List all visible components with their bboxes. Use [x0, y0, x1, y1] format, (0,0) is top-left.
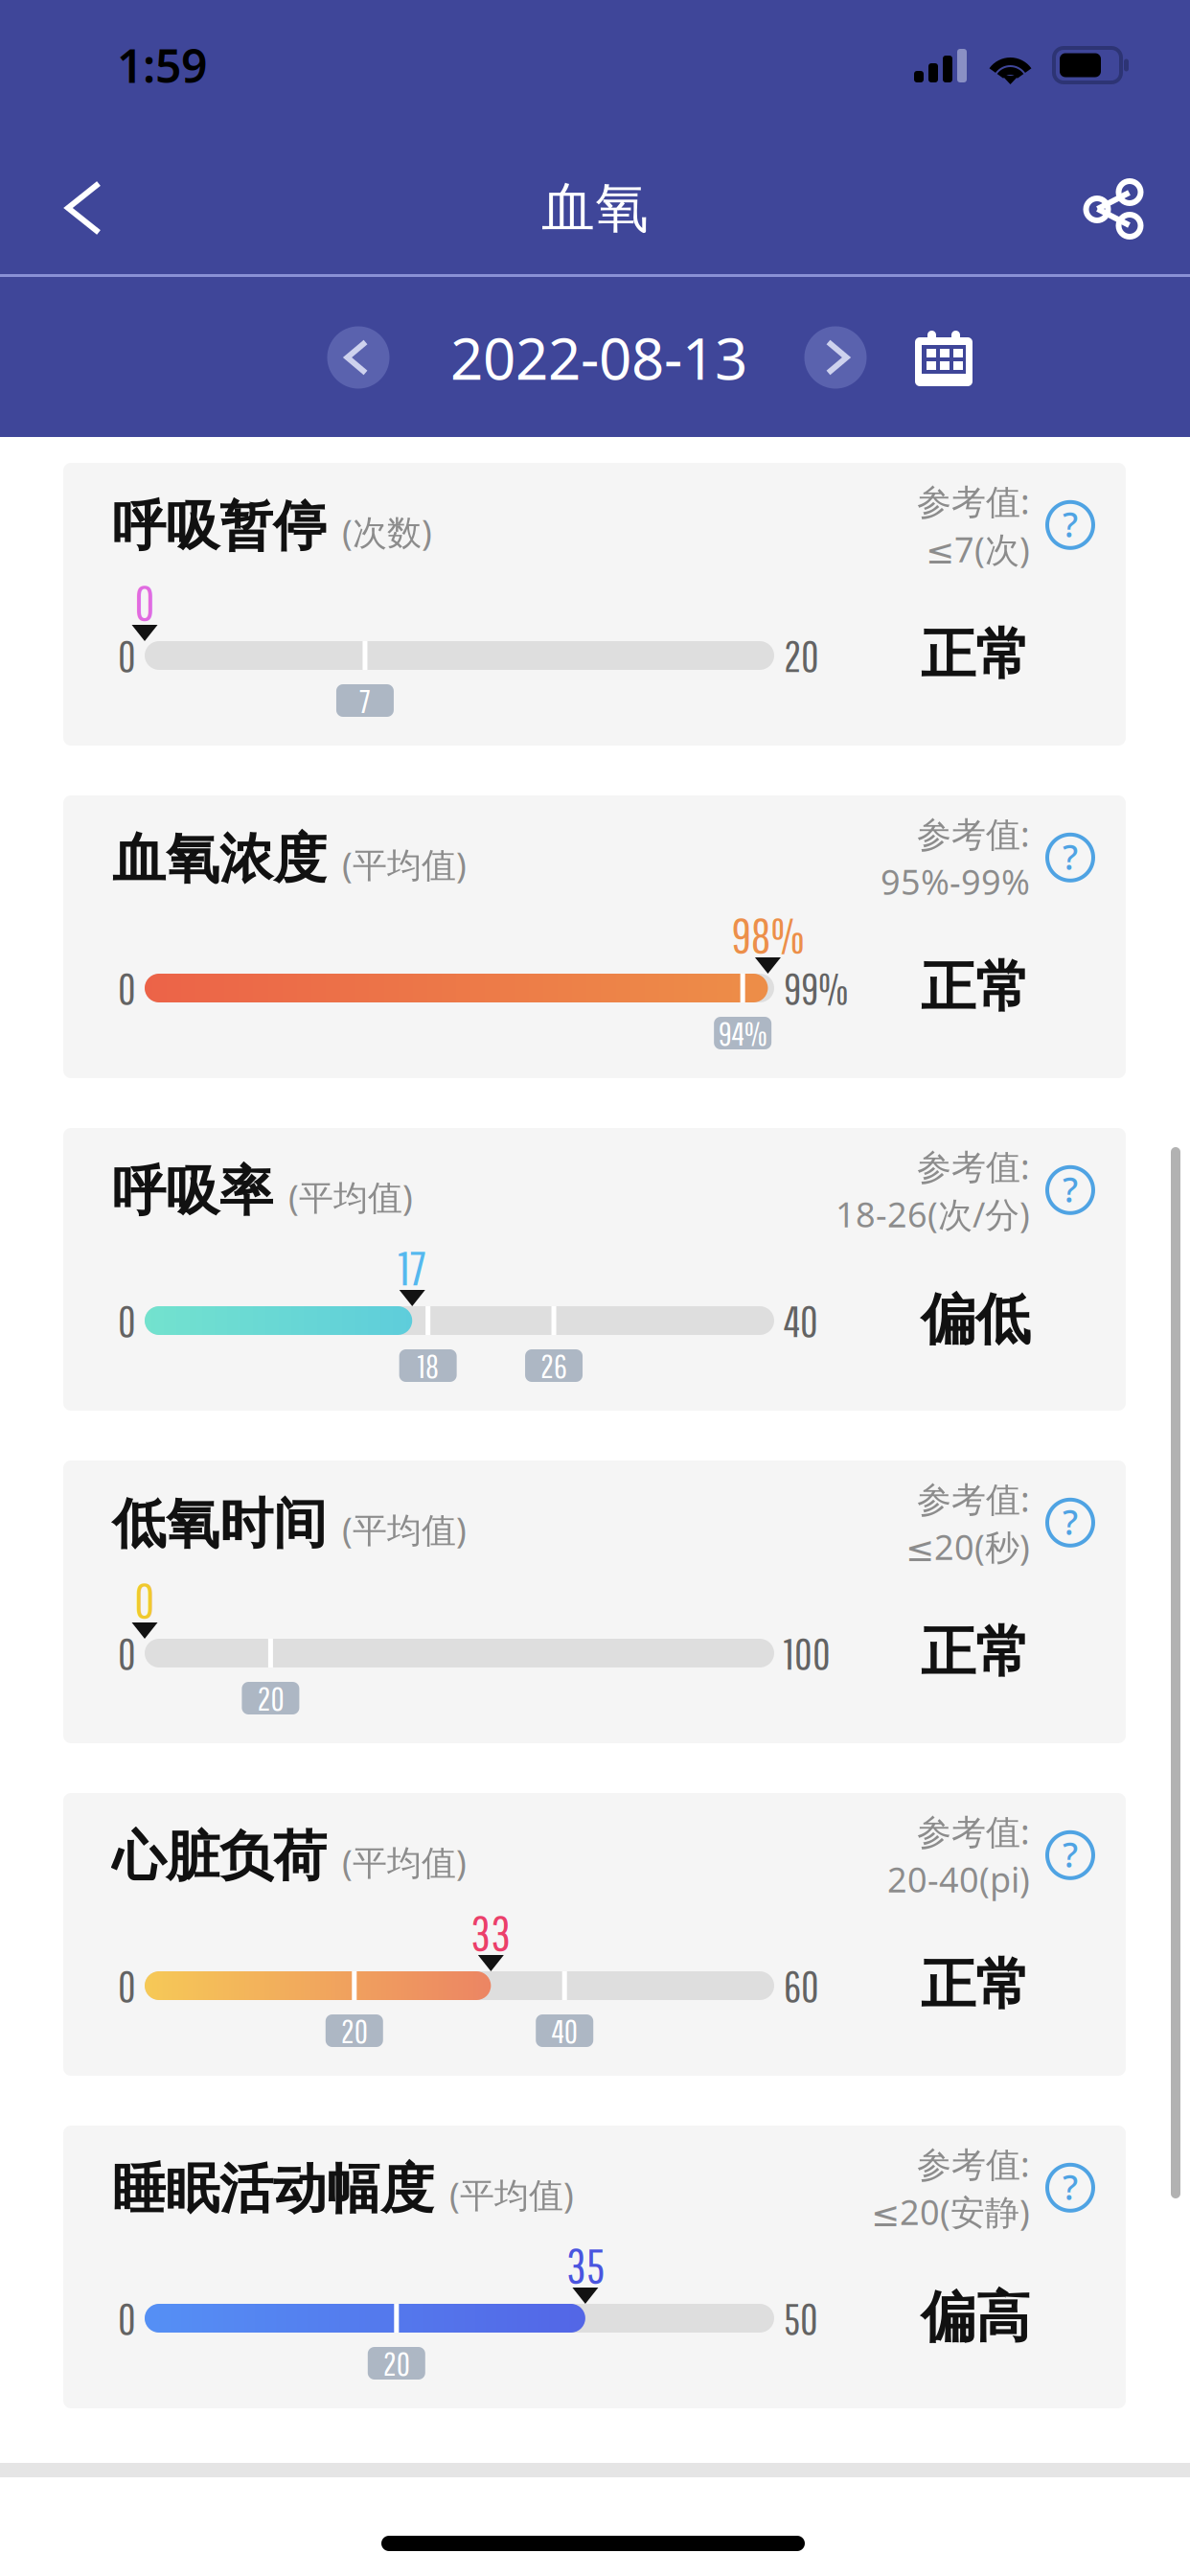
staticText: 0 — [118, 963, 136, 1013]
staticText: 17 — [398, 1239, 426, 1295]
staticText: ? — [1063, 1831, 1078, 1877]
staticText: 呼吸暂停 — [112, 494, 327, 559]
staticText: 40 — [784, 1296, 818, 1346]
staticText: 0 — [118, 1296, 136, 1346]
staticText: 参考值: — [917, 811, 1030, 857]
staticText: 偏低 — [921, 1286, 1030, 1354]
staticText: ≤20(秒) — [905, 1524, 1030, 1569]
staticText: 0 — [118, 630, 136, 681]
staticText: (平均值) — [449, 2172, 574, 2217]
staticText: 参考值: — [917, 1143, 1030, 1189]
button[interactable]: Reference value help — [1043, 2161, 1097, 2215]
staticText: 100 — [784, 1628, 831, 1678]
staticText: ≤7(次) — [926, 526, 1030, 572]
staticText: ? — [1063, 1166, 1078, 1212]
staticText: 参考值: — [917, 2141, 1030, 2187]
staticText: (平均值) — [342, 841, 467, 887]
staticText: 20-40(pi) — [887, 1856, 1030, 1902]
staticText: 0 — [118, 1961, 136, 2011]
staticText: 50 — [784, 2293, 818, 2343]
staticText: 参考值: — [917, 1476, 1030, 1522]
button[interactable]: Selected date 2022-08-13 — [436, 324, 762, 391]
button[interactable]: Reference value help — [1043, 831, 1097, 884]
staticText: 95%-99% — [881, 858, 1030, 904]
staticText: ? — [1063, 2164, 1078, 2210]
staticText: (平均值) — [288, 1174, 413, 1220]
staticText: ? — [1063, 834, 1078, 879]
staticText: 94% — [718, 1014, 767, 1052]
staticText: ≤20(安静) — [871, 2189, 1030, 2234]
staticText: 2022-08-13 — [450, 319, 747, 396]
staticText: (次数) — [342, 509, 432, 555]
staticText: 正常 — [921, 621, 1030, 688]
staticText: 心脏负荷 — [112, 1824, 327, 1890]
staticText: 18-26(次/分) — [835, 1191, 1030, 1237]
staticText: 98% — [731, 906, 804, 962]
staticText: 睡眠活动幅度 — [112, 2156, 434, 2222]
staticText: 偏高 — [921, 2284, 1030, 2351]
staticText: 20 — [383, 2344, 410, 2382]
button[interactable]: Share — [1050, 147, 1175, 271]
button[interactable]: Next day — [788, 310, 883, 405]
staticText: 60 — [784, 1961, 819, 2011]
staticText: 40 — [552, 2012, 577, 2050]
staticText: 1:59 — [117, 35, 207, 96]
staticText: ? — [1063, 1499, 1078, 1545]
staticText: 18 — [417, 1346, 439, 1385]
staticText: 正常 — [921, 954, 1030, 1021]
button[interactable]: Reference value help — [1043, 498, 1097, 552]
staticText: 呼吸率 — [112, 1159, 273, 1225]
staticText: 0 — [135, 1571, 155, 1627]
staticText: 20 — [341, 2012, 368, 2050]
staticText: (平均值) — [342, 1506, 467, 1552]
staticText: 99% — [784, 963, 848, 1013]
staticText: 0 — [118, 2293, 136, 2343]
staticText: 参考值: — [917, 1808, 1030, 1854]
button[interactable]: Reference value help — [1043, 1163, 1097, 1217]
staticText: 20 — [784, 630, 819, 681]
staticText: 血氧浓度 — [112, 826, 327, 892]
staticText: 0 — [135, 574, 155, 630]
staticText: 正常 — [921, 1619, 1030, 1686]
staticText: ? — [1063, 501, 1078, 547]
staticText: 低氧时间 — [112, 1491, 327, 1557]
staticText: 0 — [118, 1628, 136, 1678]
staticText: 26 — [540, 1346, 567, 1385]
button[interactable]: Reference value help — [1043, 1496, 1097, 1549]
staticText: (平均值) — [342, 1839, 467, 1885]
button[interactable]: Choose date — [891, 310, 996, 406]
staticText: 正常 — [921, 1951, 1030, 2019]
button[interactable]: Previous day — [310, 310, 406, 405]
staticText: 33 — [471, 1904, 511, 1960]
staticText: 7 — [359, 681, 371, 720]
staticText: 20 — [257, 1679, 284, 1717]
staticText: 参考值: — [917, 478, 1030, 524]
button[interactable]: Back — [21, 146, 146, 270]
button[interactable]: Reference value help — [1043, 1828, 1097, 1882]
staticText: 血氧 — [541, 175, 649, 241]
staticText: 35 — [566, 2237, 604, 2293]
